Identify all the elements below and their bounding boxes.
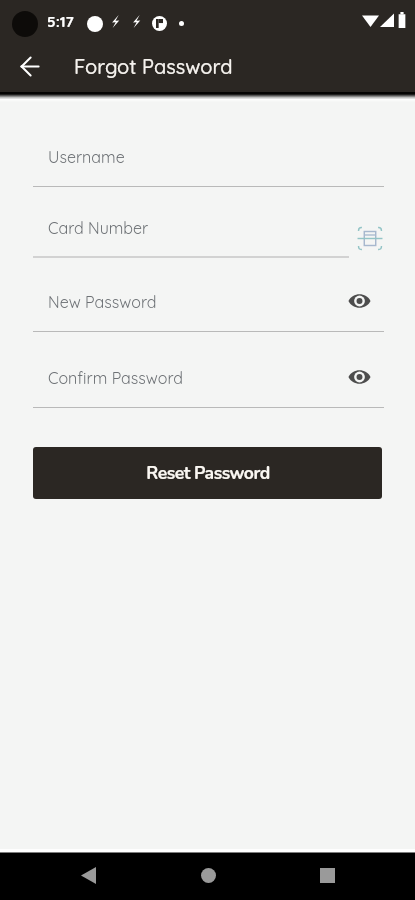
staticText: Forgot Password xyxy=(74,54,233,79)
button[interactable]: Recents xyxy=(303,853,351,900)
button[interactable]: Toggle password visibility xyxy=(342,360,376,394)
staticText: Confirm Password xyxy=(48,368,184,388)
staticText: Reset Password xyxy=(146,461,270,485)
staticText: New Password xyxy=(48,292,157,312)
button[interactable]: Back xyxy=(64,853,112,900)
staticText: 5:17 xyxy=(47,12,74,31)
staticText: Username xyxy=(48,147,125,167)
button[interactable]: Reset Password xyxy=(33,447,382,499)
staticText: Card Number xyxy=(48,218,149,238)
button[interactable]: Home xyxy=(184,853,232,900)
button[interactable]: Back xyxy=(0,40,58,92)
button[interactable]: Scan card xyxy=(354,222,386,254)
button[interactable]: Toggle password visibility xyxy=(342,284,376,318)
